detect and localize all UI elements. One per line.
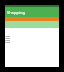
button[interactable]: Shopping bbox=[5, 7, 59, 17]
staticText: Shopping bbox=[7, 10, 25, 15]
